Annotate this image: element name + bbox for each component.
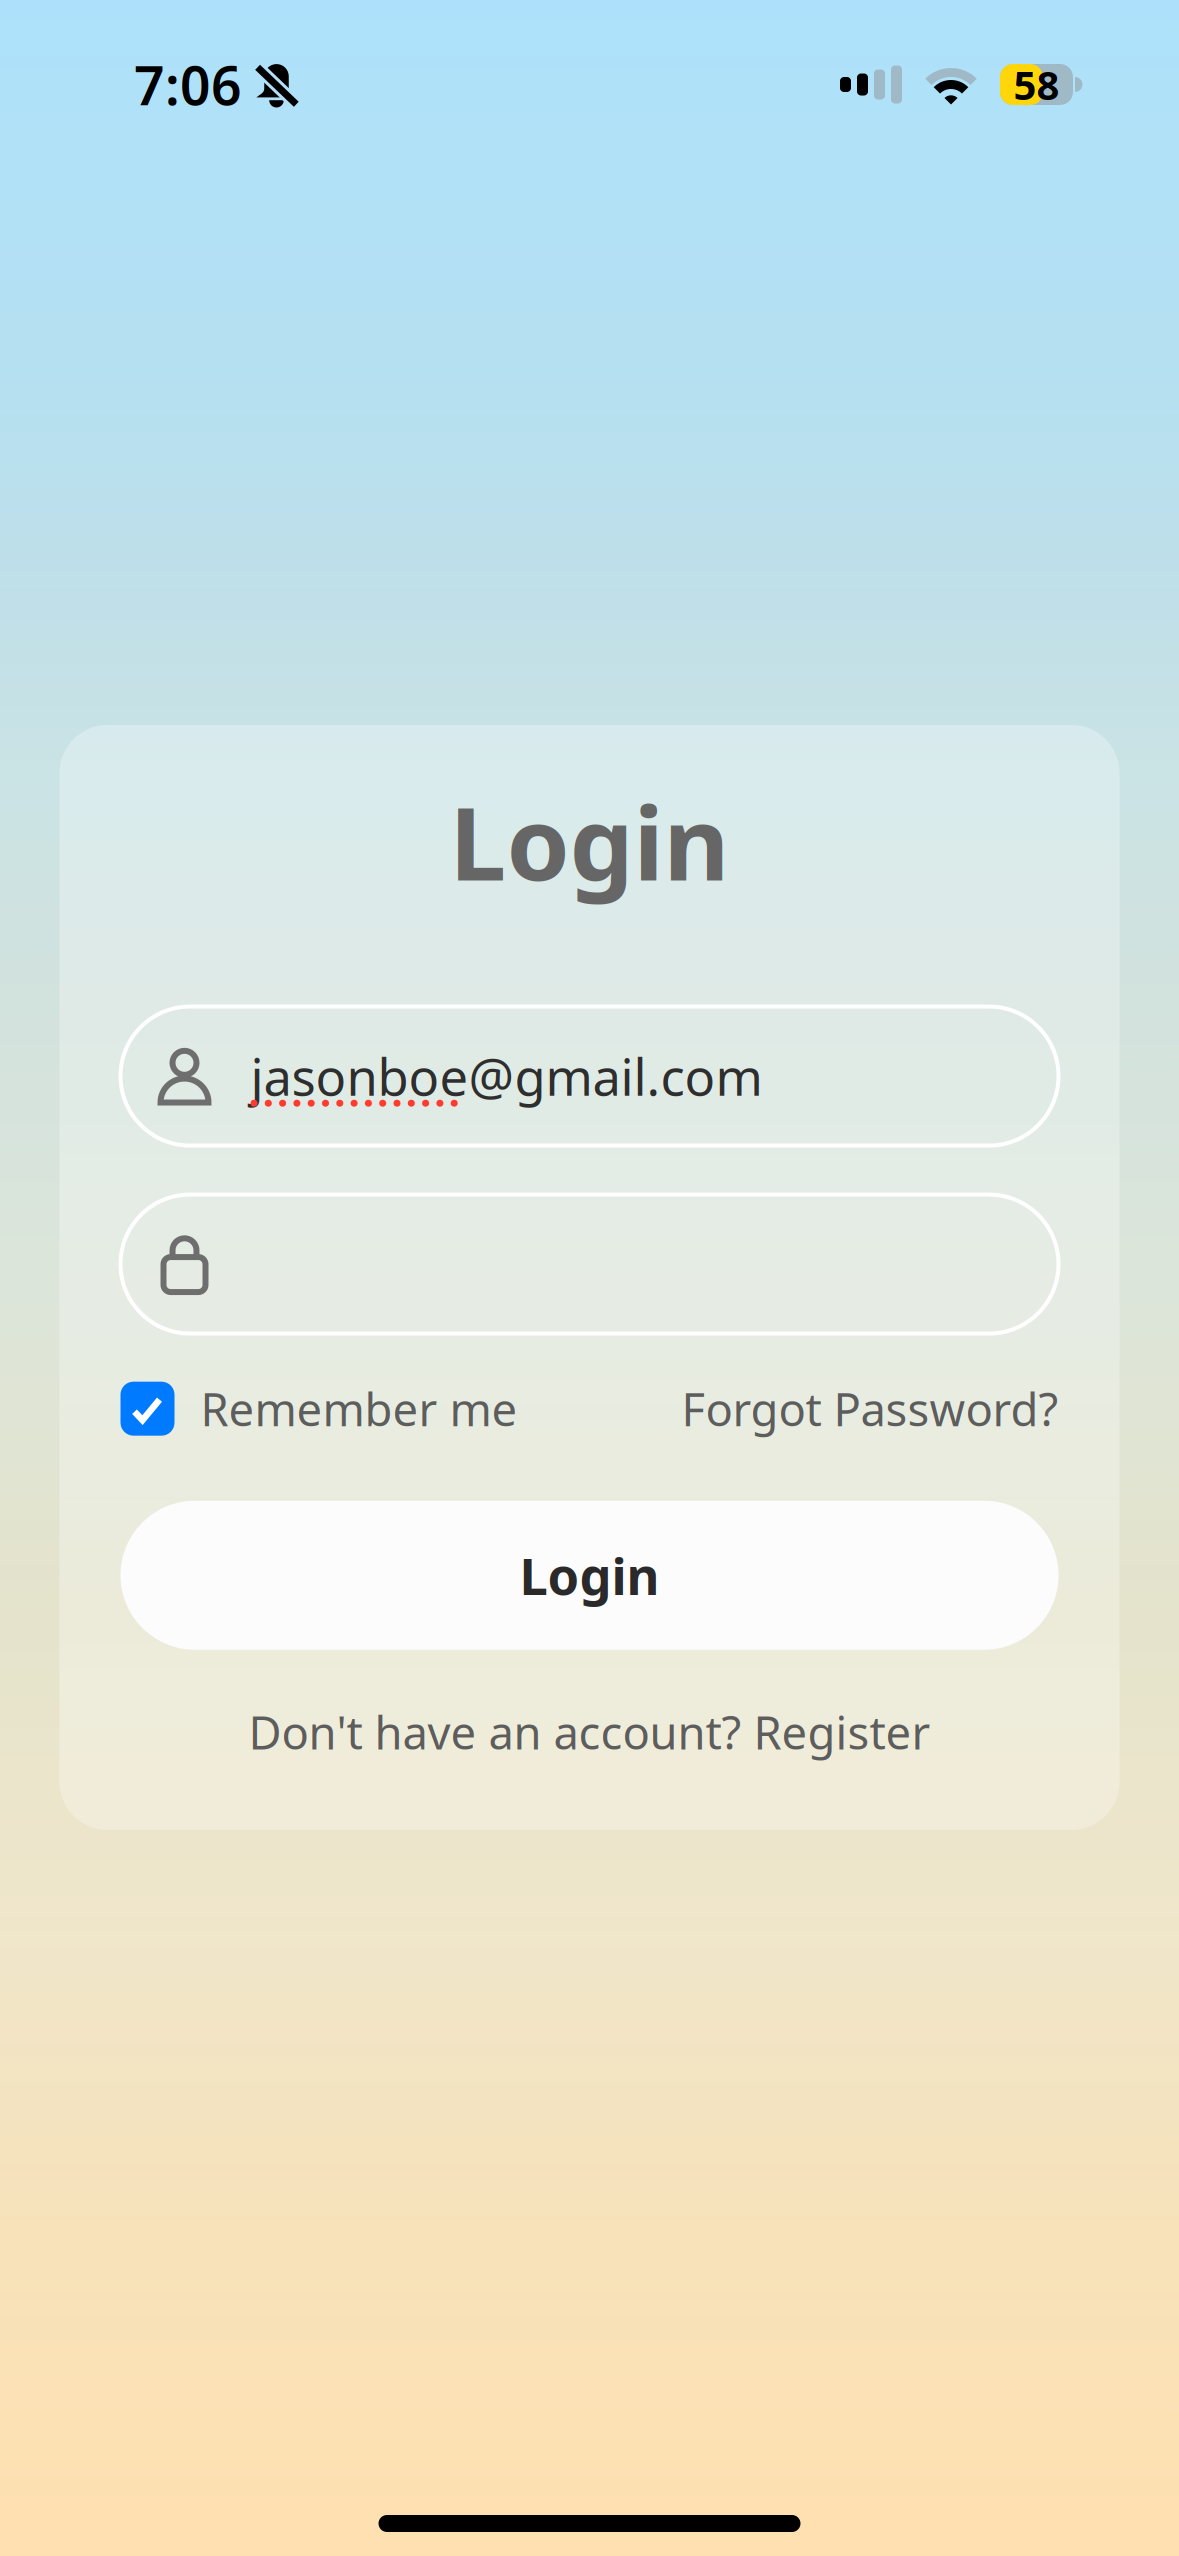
staticText: 58 — [1013, 58, 1059, 111]
staticText: 7:06 — [134, 49, 242, 120]
button[interactable]: Don't have an account? Register — [248, 1702, 930, 1762]
staticText: Remember me — [200, 1379, 517, 1439]
staticText: Forgot Password? — [681, 1379, 1058, 1439]
staticText: Login — [449, 774, 729, 909]
button[interactable]: Forgot Password? — [681, 1379, 1058, 1439]
staticText: Don't have an account? Register — [248, 1702, 930, 1762]
staticText: jasonboe@gmail.com — [250, 1042, 762, 1110]
staticText: Login — [519, 1542, 659, 1609]
button[interactable]: Login — [120, 1501, 1058, 1650]
button[interactable]: Remember me — [120, 1379, 517, 1439]
